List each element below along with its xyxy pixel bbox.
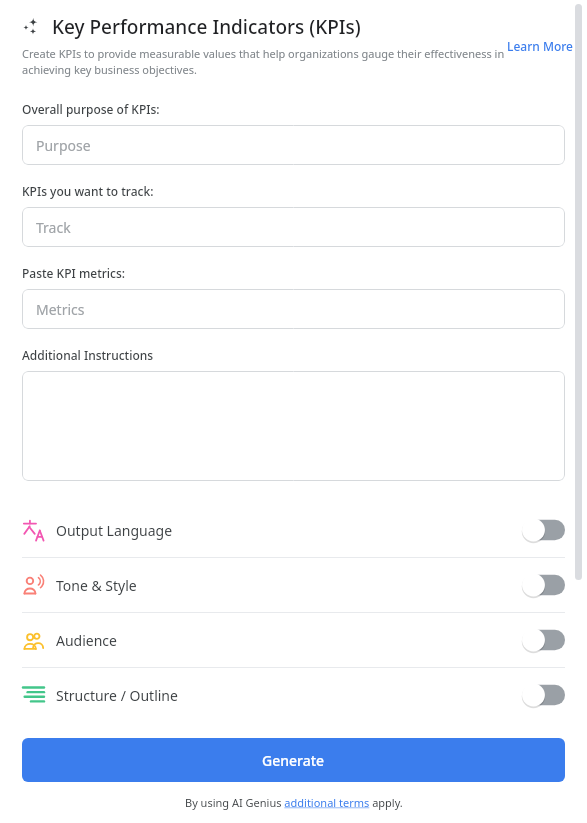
staticText: Metrics bbox=[36, 300, 85, 319]
button[interactable]: Toggle bbox=[521, 627, 565, 653]
staticText: Output Language bbox=[56, 521, 173, 540]
staticText: Additional Instructions bbox=[22, 347, 154, 363]
staticText: Track bbox=[36, 218, 71, 237]
staticText: By using AI Genius additional terms appl… bbox=[185, 795, 403, 810]
button[interactable]: Toggle bbox=[521, 682, 565, 708]
staticText: Generate bbox=[262, 751, 325, 770]
button[interactable]: Audience bbox=[0, 613, 587, 667]
button[interactable]: Tone & Style bbox=[0, 558, 587, 612]
button[interactable]: Track bbox=[22, 207, 565, 247]
staticText: KPIs you want to track: bbox=[22, 183, 154, 199]
button[interactable] bbox=[22, 371, 565, 481]
staticText: Audience bbox=[56, 631, 117, 650]
staticText: Overall purpose of KPIs: bbox=[22, 101, 160, 117]
staticText: Learn More bbox=[507, 38, 573, 54]
button[interactable]: Toggle bbox=[521, 572, 565, 598]
staticText: Key Performance Indicators (KPIs) bbox=[52, 14, 361, 40]
button[interactable]: Purpose bbox=[22, 125, 565, 165]
button[interactable]: Structure / Outline bbox=[0, 668, 587, 722]
staticText: Tone & Style bbox=[56, 576, 137, 595]
button[interactable]: Learn More bbox=[507, 38, 573, 54]
staticText: Structure / Outline bbox=[56, 686, 178, 705]
button[interactable]: Metrics bbox=[22, 289, 565, 329]
button[interactable]: Output Language bbox=[0, 503, 587, 557]
staticText: Purpose bbox=[36, 136, 91, 155]
button[interactable]: Toggle bbox=[521, 517, 565, 543]
staticText: Create KPIs to provide measurable values… bbox=[22, 46, 507, 77]
staticText: Paste KPI metrics: bbox=[22, 265, 126, 281]
button[interactable]: Generate bbox=[22, 738, 565, 782]
